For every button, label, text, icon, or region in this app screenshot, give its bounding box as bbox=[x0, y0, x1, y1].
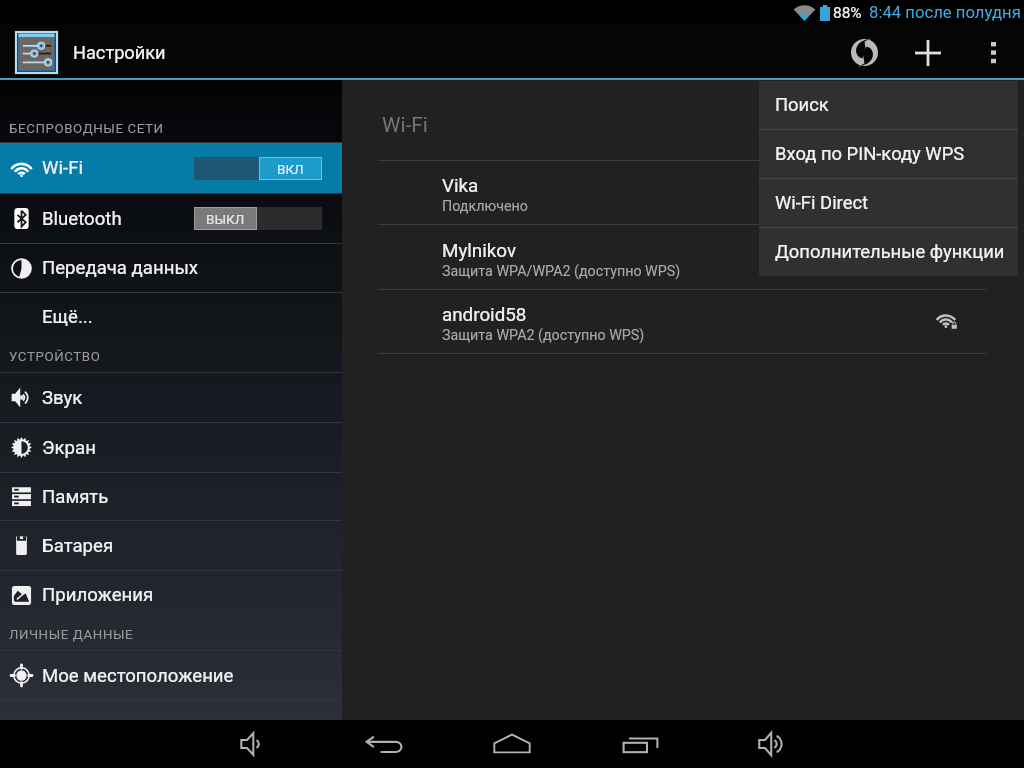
button[interactable]: Передача данных bbox=[0, 244, 342, 292]
button[interactable]: Wi-Fi Direct bbox=[759, 179, 1018, 227]
button[interactable]: Поиск bbox=[759, 81, 1018, 129]
button[interactable]: Ещё... bbox=[0, 293, 342, 341]
staticText: Ещё... bbox=[42, 306, 93, 328]
staticText: Bluetooth bbox=[42, 208, 122, 230]
staticText: Мое местоположение bbox=[42, 665, 234, 687]
button[interactable]: Mylnikov bbox=[342, 225, 1024, 289]
staticText: Память bbox=[42, 486, 109, 508]
button[interactable]: Vika bbox=[342, 161, 1024, 224]
button[interactable]: Приложения bbox=[0, 571, 342, 619]
button[interactable]: Мое местоположение bbox=[0, 651, 342, 700]
staticText: Приложения bbox=[42, 584, 154, 606]
staticText: Дополнительные функции bbox=[775, 241, 1005, 263]
button[interactable]: Обзор bbox=[612, 720, 670, 768]
staticText: Настройки bbox=[73, 42, 166, 63]
staticText: Передача данных bbox=[42, 257, 199, 279]
staticText: Защита WPA/WPA2 (доступно WPS) bbox=[442, 263, 681, 280]
staticText: Vika bbox=[442, 175, 479, 197]
button[interactable]: Вход по PIN-коду WPS bbox=[759, 130, 1018, 178]
staticText: Wi-Fi Direct bbox=[775, 192, 869, 214]
staticText: Батарея bbox=[42, 535, 114, 557]
staticText: Подключено bbox=[442, 198, 528, 215]
button[interactable]: Экран bbox=[0, 423, 342, 472]
staticText: Mylnikov bbox=[442, 240, 517, 262]
button[interactable]: Дополнительные функции bbox=[759, 228, 1018, 276]
button[interactable]: Bluetooth bbox=[0, 194, 342, 243]
button[interactable]: Настройки bbox=[15, 31, 58, 74]
staticText: БЕСПРОВОДНЫЕ СЕТИ bbox=[9, 121, 164, 137]
staticText: 8:44 после полудня bbox=[869, 3, 1021, 23]
button[interactable]: Память bbox=[0, 473, 342, 520]
button[interactable]: Главный экран bbox=[483, 720, 541, 768]
staticText: Экран bbox=[42, 437, 96, 459]
button[interactable]: Увеличить громкость bbox=[743, 720, 801, 768]
button[interactable]: Назад bbox=[355, 720, 413, 768]
staticText: Вход по PIN-коду WPS bbox=[775, 143, 965, 165]
staticText: Поиск bbox=[775, 94, 829, 116]
staticText: ВКЛ bbox=[277, 161, 304, 177]
staticText: Wi-Fi bbox=[382, 113, 428, 137]
staticText: Защита WPA2 (доступно WPS) bbox=[442, 327, 645, 344]
staticText: ВЫКЛ bbox=[206, 211, 245, 227]
staticText: 88% bbox=[833, 4, 862, 22]
staticText: Wi-Fi bbox=[42, 157, 83, 179]
staticText: ЛИЧНЫЕ ДАННЫЕ bbox=[9, 627, 134, 643]
staticText: android58 bbox=[442, 304, 527, 326]
button[interactable]: Обновить bbox=[836, 25, 892, 80]
staticText: УСТРОЙСТВО bbox=[9, 349, 101, 365]
button[interactable]: Батарея bbox=[0, 521, 342, 570]
button[interactable]: Добавить bbox=[900, 25, 956, 80]
button[interactable]: Уменьшить громкость bbox=[223, 720, 281, 768]
staticText: Звук bbox=[42, 387, 83, 409]
button[interactable]: Звук bbox=[0, 373, 342, 422]
button[interactable]: android58 bbox=[342, 290, 1024, 353]
button[interactable]: Wi-Fi bbox=[0, 143, 342, 193]
button[interactable]: Ещё bbox=[965, 25, 1021, 80]
